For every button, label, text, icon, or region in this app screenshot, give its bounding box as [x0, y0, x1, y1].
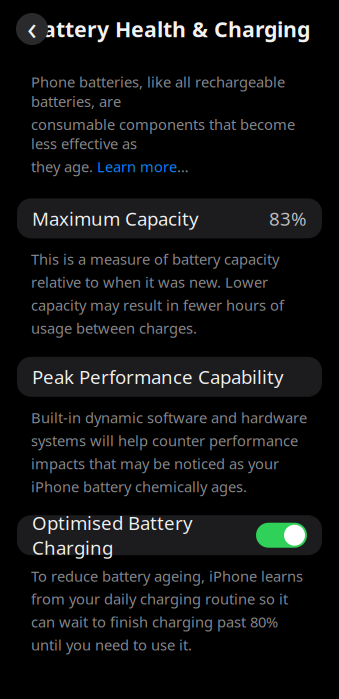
staticText: Maximum Capacity — [32, 206, 199, 231]
staticText: Peak Performance Capability — [32, 364, 284, 389]
staticText: Learn more — [97, 157, 177, 176]
staticText: they age. — [31, 157, 97, 176]
button[interactable]: Back — [16, 13, 48, 45]
staticText: Battery Health & Charging — [29, 15, 310, 43]
staticText: Phone batteries, like all rechargeable b… — [31, 72, 285, 111]
staticText: Optimised Battery Charging — [32, 510, 193, 560]
staticText: This is a measure of battery capacity re… — [31, 249, 284, 338]
staticText: To reduce battery ageing, iPhone learns … — [31, 566, 303, 655]
staticText: 83% — [269, 206, 307, 231]
button[interactable]: Maximum Capacity — [0, 198, 339, 238]
staticText: … — [177, 157, 189, 176]
staticText: Built-in dynamic software and hardware s… — [31, 408, 307, 496]
button[interactable]: Optimised Battery Charging — [0, 515, 339, 555]
button[interactable]: Learn more — [97, 157, 177, 176]
staticText: consumable components that become less e… — [31, 114, 295, 153]
staticText: ‹ — [27, 6, 37, 49]
button[interactable]: Peak Performance Capability — [0, 357, 339, 397]
